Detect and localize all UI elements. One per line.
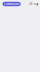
staticText: CONFIGURE xyxy=(4,2,19,6)
staticText: ıll ᯤ ▮ xyxy=(29,2,37,6)
